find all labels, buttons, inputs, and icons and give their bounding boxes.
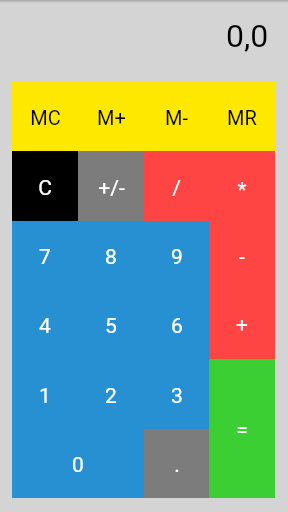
staticText: + <box>236 313 248 338</box>
button[interactable]: 5 <box>78 290 144 359</box>
staticText: 0,0 <box>226 17 269 55</box>
button[interactable]: = <box>209 359 275 498</box>
button[interactable]: MC <box>12 82 78 151</box>
staticText: 5 <box>105 314 117 339</box>
staticText: . <box>174 453 180 478</box>
staticText: MR <box>227 106 257 129</box>
staticText: 4 <box>39 314 51 339</box>
staticText: 0 <box>72 453 84 478</box>
staticText: / <box>172 176 181 201</box>
staticText: M- <box>165 106 188 129</box>
staticText: M+ <box>97 106 126 129</box>
button[interactable]: 8 <box>78 221 144 290</box>
button[interactable]: - <box>209 221 275 290</box>
staticText: 8 <box>105 245 117 270</box>
button[interactable]: 4 <box>12 290 78 359</box>
button[interactable]: 0 <box>12 429 144 498</box>
button[interactable]: . <box>144 429 209 498</box>
staticText: 1 <box>39 384 51 409</box>
staticText: 7 <box>39 245 51 270</box>
staticText: 3 <box>171 384 183 409</box>
button[interactable]: 9 <box>144 221 209 290</box>
staticText: +/- <box>98 176 125 201</box>
button[interactable]: + <box>209 290 275 359</box>
button[interactable]: 6 <box>144 290 209 359</box>
button[interactable]: M- <box>144 82 209 151</box>
button[interactable]: +/- <box>78 151 144 221</box>
button[interactable]: 1 <box>12 359 78 429</box>
button[interactable]: 7 <box>12 221 78 290</box>
staticText: 9 <box>171 245 183 270</box>
staticText: C <box>38 176 52 201</box>
staticText: 2 <box>105 384 117 409</box>
staticText: = <box>236 418 248 443</box>
staticText: 6 <box>171 314 183 339</box>
button[interactable]: 3 <box>144 359 209 429</box>
button[interactable]: 2 <box>78 359 144 429</box>
button[interactable]: / <box>144 151 209 221</box>
button[interactable]: C <box>12 151 78 221</box>
button[interactable]: M+ <box>78 82 144 151</box>
staticText: - <box>239 245 245 270</box>
staticText: * <box>237 178 247 203</box>
staticText: MC <box>30 106 61 129</box>
button[interactable]: * <box>209 151 275 221</box>
button[interactable]: MR <box>209 82 275 151</box>
